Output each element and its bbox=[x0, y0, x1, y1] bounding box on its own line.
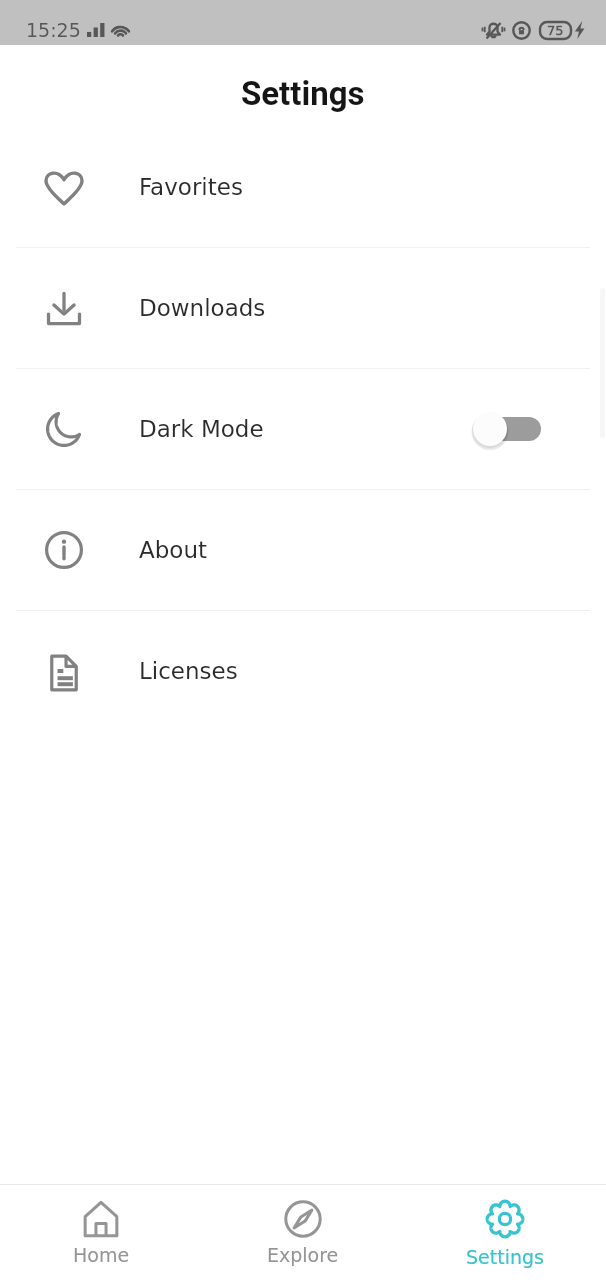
button[interactable]: Dark Mode bbox=[0, 369, 606, 489]
staticText: Explore bbox=[267, 1244, 339, 1266]
button[interactable]: Dark Mode toggle bbox=[469, 405, 541, 453]
button[interactable]: Settings bbox=[404, 1198, 606, 1268]
button[interactable]: Downloads bbox=[0, 248, 606, 368]
staticText: About bbox=[139, 537, 208, 564]
button[interactable]: Licenses bbox=[0, 611, 606, 731]
button[interactable]: Explore bbox=[202, 1200, 404, 1266]
staticText: Settings bbox=[241, 74, 365, 113]
button[interactable]: Favorites bbox=[0, 127, 606, 247]
button[interactable]: About bbox=[0, 490, 606, 610]
staticText: Dark Mode bbox=[139, 416, 264, 443]
staticText: Favorites bbox=[139, 174, 243, 201]
staticText: Home bbox=[73, 1244, 130, 1266]
staticText: Licenses bbox=[139, 658, 238, 685]
staticText: Settings bbox=[466, 1246, 544, 1268]
staticText: Downloads bbox=[139, 295, 266, 322]
staticText: 75 bbox=[547, 23, 564, 38]
staticText: 15:25 bbox=[26, 19, 81, 41]
button[interactable]: Home bbox=[0, 1200, 202, 1266]
